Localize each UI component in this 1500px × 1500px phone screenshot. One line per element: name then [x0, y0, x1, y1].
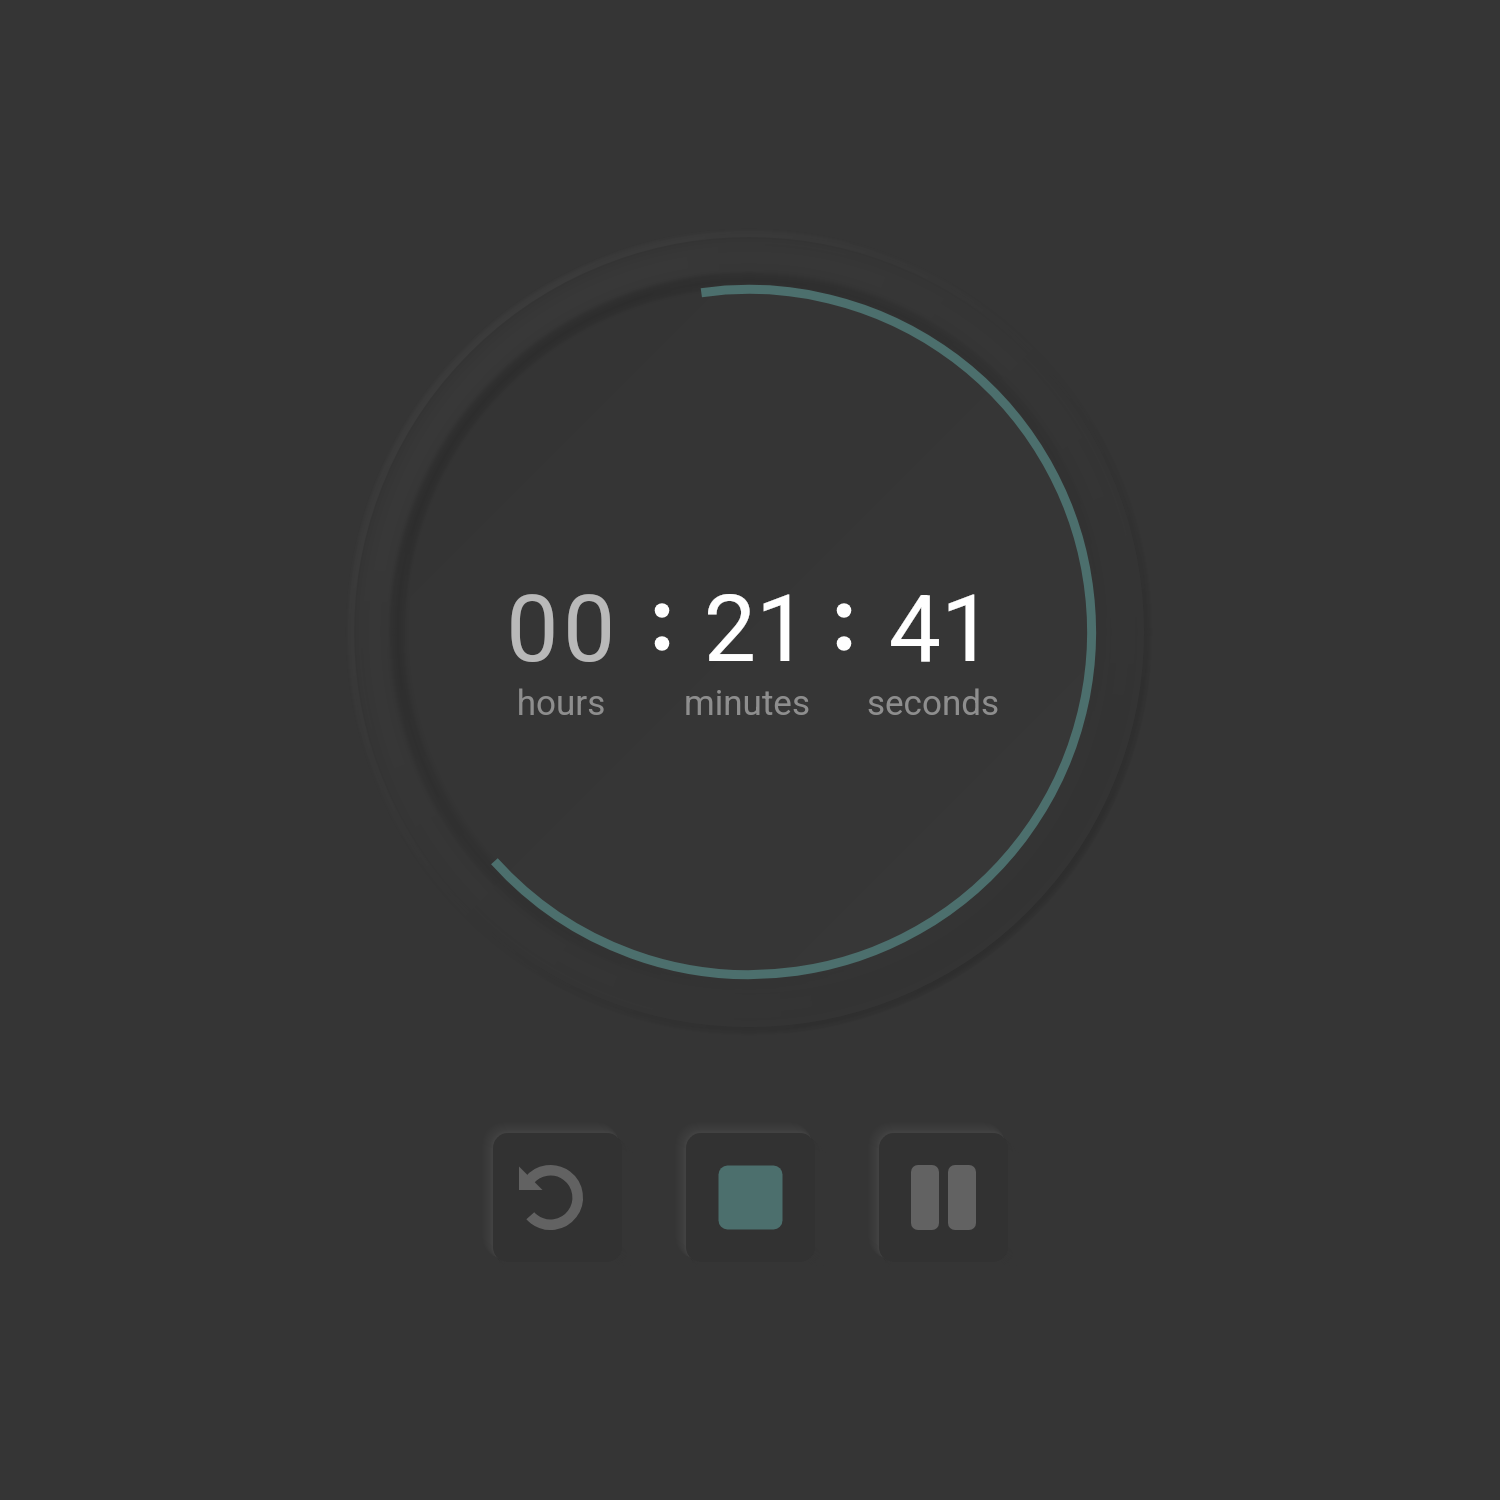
- staticText: hours: [468, 683, 654, 724]
- button[interactable]: Reset: [493, 1133, 622, 1262]
- staticText: 41: [848, 575, 1034, 684]
- button[interactable]: Pause: [879, 1133, 1008, 1262]
- staticText: 00: [470, 575, 656, 684]
- button[interactable]: Stop: [686, 1133, 815, 1262]
- staticText: 21: [663, 575, 849, 684]
- staticText: minutes: [654, 683, 840, 724]
- staticText: seconds: [840, 683, 1026, 724]
